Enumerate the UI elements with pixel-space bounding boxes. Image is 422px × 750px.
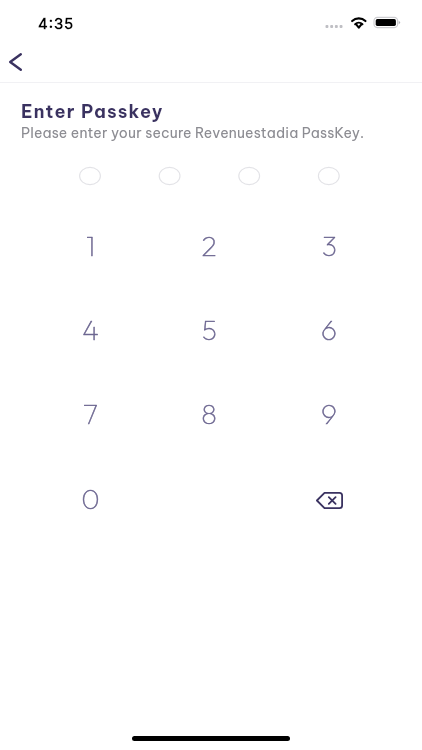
staticText: 3 [322, 228, 337, 263]
staticText: 8 [201, 396, 217, 431]
staticText: 4 [82, 312, 99, 347]
other: Backspace [316, 492, 343, 509]
button[interactable]: 2 [171, 207, 247, 283]
staticText: 0 [81, 481, 100, 516]
staticText: 4 [82, 312, 99, 347]
staticText: 1 [86, 228, 95, 263]
staticText: 4:35 [38, 14, 75, 32]
button[interactable]: 7 [52, 375, 128, 451]
staticText: 0 [81, 481, 100, 516]
staticText: 8 [201, 396, 217, 431]
staticText: 2 [201, 228, 217, 263]
staticText: 6 [321, 312, 337, 347]
staticText: 2 [201, 228, 217, 263]
staticText: 6 [321, 312, 337, 347]
staticText: Please enter your secure Revenuestadia P… [21, 124, 365, 142]
button[interactable]: Backspace [291, 460, 367, 536]
staticText: 9 [321, 396, 337, 431]
staticText: 5 [202, 312, 217, 347]
button[interactable]: 8 [171, 375, 247, 451]
button[interactable]: 1 [52, 207, 128, 283]
button[interactable]: 3 [291, 207, 367, 283]
staticText: 7 [83, 396, 98, 431]
staticText: 9 [321, 396, 337, 431]
button[interactable]: 4 [52, 291, 128, 367]
staticText: 1 [86, 228, 95, 263]
button[interactable]: 9 [291, 375, 367, 451]
button[interactable]: 0 [52, 460, 128, 536]
staticText: 3 [322, 228, 337, 263]
staticText: 5 [202, 312, 217, 347]
button[interactable]: 6 [291, 291, 367, 367]
staticText: Enter Passkey [21, 100, 164, 123]
button[interactable]: 5 [171, 291, 247, 367]
staticText: 7 [83, 396, 98, 431]
button[interactable]: Back [0, 44, 33, 80]
